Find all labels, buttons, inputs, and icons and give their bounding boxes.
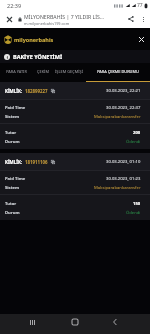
staticText: Tutar <box>5 130 17 136</box>
button[interactable]: Close <box>0 10 18 28</box>
staticText: BAKİYE YÖNETİMİ <box>13 53 63 60</box>
button[interactable]: İŞLEM GEÇMİŞİ <box>52 63 86 80</box>
staticText: 30.03.2023, 01:10 <box>106 159 141 165</box>
staticText: Paid Time <box>5 176 26 182</box>
button[interactable]: PARA ÇEKME DURUMU <box>86 63 150 80</box>
staticText: Maksiparabankaransfer <box>94 114 141 120</box>
button[interactable]: Close banner <box>132 28 150 50</box>
staticText: 181911106 <box>25 159 48 165</box>
staticText: Maksiparabankaransfer <box>94 185 141 191</box>
staticText: 22:39 <box>7 2 22 9</box>
staticText: Ödendi <box>126 139 141 145</box>
staticText: KİMLİK: <box>5 88 23 94</box>
staticText: Ödendi <box>126 210 141 216</box>
staticText: 150 <box>133 201 141 207</box>
staticText: 30.03.2023, 22:21 <box>106 88 141 94</box>
staticText: Durum <box>5 210 20 216</box>
button[interactable]: Copy <box>50 159 55 164</box>
staticText: Sistem <box>5 185 20 191</box>
staticText: 30.03.2023, 01:23 <box>106 176 141 182</box>
staticText: milyonerbahis <box>14 36 54 43</box>
button[interactable]: PARA YATIR <box>0 63 33 80</box>
staticText: PARA YATIR <box>6 69 27 74</box>
staticText: 182899227 <box>25 88 48 94</box>
button[interactable]: Back <box>100 314 129 334</box>
button[interactable]: Home <box>60 314 89 334</box>
staticText: m.milyonerbahis199.com <box>24 21 70 26</box>
staticText: Sistem <box>5 114 20 120</box>
staticText: İŞLEM GEÇMİŞİ <box>55 69 83 74</box>
staticText: 200 <box>133 130 141 136</box>
button[interactable]: Copy <box>50 88 55 93</box>
staticText: 30.03.2023, 22:37 <box>106 105 141 111</box>
button[interactable]: ÇEKİM <box>33 63 52 80</box>
staticText: PARA ÇEKME DURUMU <box>97 69 139 74</box>
staticText: KİMLİK: <box>5 159 23 165</box>
staticText: Paid Time <box>5 105 26 111</box>
staticText: Durum <box>5 139 20 145</box>
button[interactable]: Recent apps <box>18 314 47 334</box>
staticText: MİLYONERBAHİS | 7 YILDIR LİS... <box>24 13 105 20</box>
button[interactable]: More options <box>137 10 150 28</box>
staticText: ÇEKİM <box>37 69 49 74</box>
button[interactable]: Share <box>124 10 137 28</box>
staticText: Tutar <box>5 201 17 207</box>
staticText: 77 <box>137 2 143 9</box>
